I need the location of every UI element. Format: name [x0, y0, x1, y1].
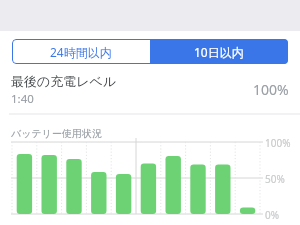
staticText: 100% — [265, 136, 291, 150]
staticText: 1:40 — [11, 91, 34, 107]
staticText: 10日以内 — [194, 44, 244, 60]
staticText: 50% — [265, 172, 285, 186]
staticText: 100% — [253, 80, 289, 99]
button[interactable]: 24時間以内 — [12, 39, 150, 64]
button[interactable]: 最後の充電レベル — [0, 70, 300, 110]
button[interactable]: 10日以内 — [150, 39, 288, 64]
staticText: 0% — [265, 208, 280, 222]
staticText: 24時間以内 — [50, 44, 112, 60]
staticText: 最後の充電レベル — [11, 73, 117, 89]
staticText: バッテリー使用状況 — [11, 127, 102, 140]
